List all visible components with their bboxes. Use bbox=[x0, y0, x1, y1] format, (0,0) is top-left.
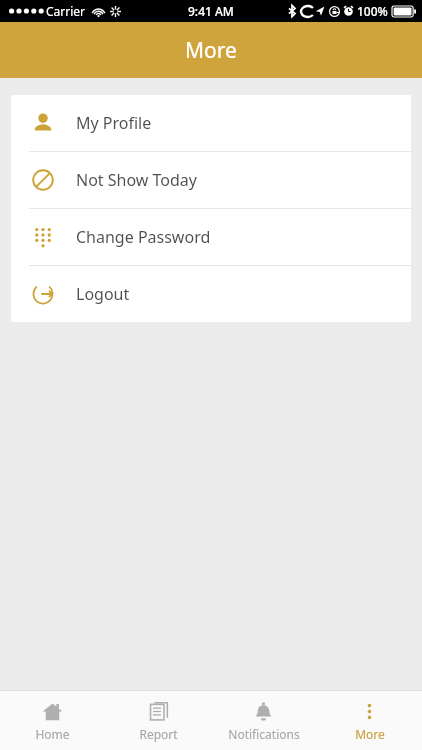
staticText: Home bbox=[35, 726, 70, 742]
staticText: Change Password bbox=[76, 226, 211, 248]
staticText: 100% bbox=[357, 3, 388, 19]
staticText: Notifications bbox=[228, 726, 300, 742]
staticText: Not Show Today bbox=[76, 169, 197, 191]
button[interactable]: My Profile bbox=[11, 95, 411, 151]
other: Report bbox=[148, 701, 169, 722]
other: More bbox=[359, 701, 380, 722]
staticText: My Profile bbox=[76, 112, 152, 134]
staticText: Logout bbox=[76, 283, 130, 305]
button[interactable]: Home bbox=[0, 694, 105, 748]
other: Notifications bbox=[253, 701, 274, 722]
staticText: More bbox=[355, 726, 385, 742]
staticText: Carrier bbox=[46, 3, 86, 19]
staticText: 9:41 AM bbox=[188, 3, 234, 19]
button[interactable]: Notifications bbox=[211, 694, 316, 748]
button[interactable]: Change Password bbox=[11, 209, 411, 265]
button[interactable]: Not Show Today bbox=[11, 152, 411, 208]
button[interactable]: Logout bbox=[11, 266, 411, 322]
staticText: Report bbox=[139, 726, 178, 742]
button[interactable]: More bbox=[317, 694, 422, 748]
button[interactable]: Report bbox=[106, 694, 211, 748]
other: Home bbox=[42, 701, 63, 722]
staticText: More bbox=[185, 36, 237, 65]
